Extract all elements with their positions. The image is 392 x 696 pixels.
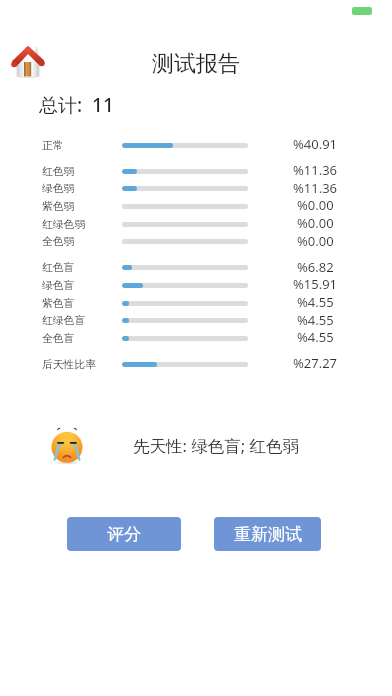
staticText: %4.55 [297, 311, 334, 329]
staticText: %6.82 [297, 258, 334, 276]
staticText: 测试报告 [152, 50, 240, 78]
staticText: %4.55 [297, 293, 334, 311]
staticText: %11.36 [293, 161, 338, 179]
staticText: 后天性比率 [42, 358, 96, 372]
button[interactable]: 重新测试 [214, 517, 321, 551]
staticText: 全色盲 [42, 332, 75, 346]
staticText: 评分 [107, 524, 141, 545]
staticText: %15.91 [293, 275, 338, 293]
staticText: 红绿色盲 [42, 314, 86, 328]
staticText: 总计: 11 [39, 92, 114, 118]
staticText: 绿色盲 [42, 279, 75, 293]
staticText: 紫色盲 [42, 297, 75, 311]
staticText: 紫色弱 [42, 200, 75, 214]
staticText: %0.00 [297, 214, 334, 232]
staticText: 红色盲 [42, 261, 75, 275]
staticText: %27.27 [293, 354, 338, 372]
staticText: 红色弱 [42, 165, 75, 179]
button[interactable]: 评分 [67, 517, 181, 551]
staticText: %0.00 [297, 196, 334, 214]
staticText: 先天性: 绿色盲; 红色弱 [133, 434, 299, 457]
staticText: %0.00 [297, 232, 334, 250]
staticText: %40.91 [293, 135, 338, 153]
staticText: %11.36 [293, 179, 338, 197]
staticText: 红绿色弱 [42, 218, 86, 232]
staticText: 绿色弱 [42, 182, 75, 196]
staticText: 全色弱 [42, 235, 75, 249]
staticText: %4.55 [297, 328, 334, 346]
staticText: 正常 [42, 139, 64, 153]
staticText: 重新测试 [234, 524, 302, 545]
button[interactable]: Home [12, 45, 44, 77]
